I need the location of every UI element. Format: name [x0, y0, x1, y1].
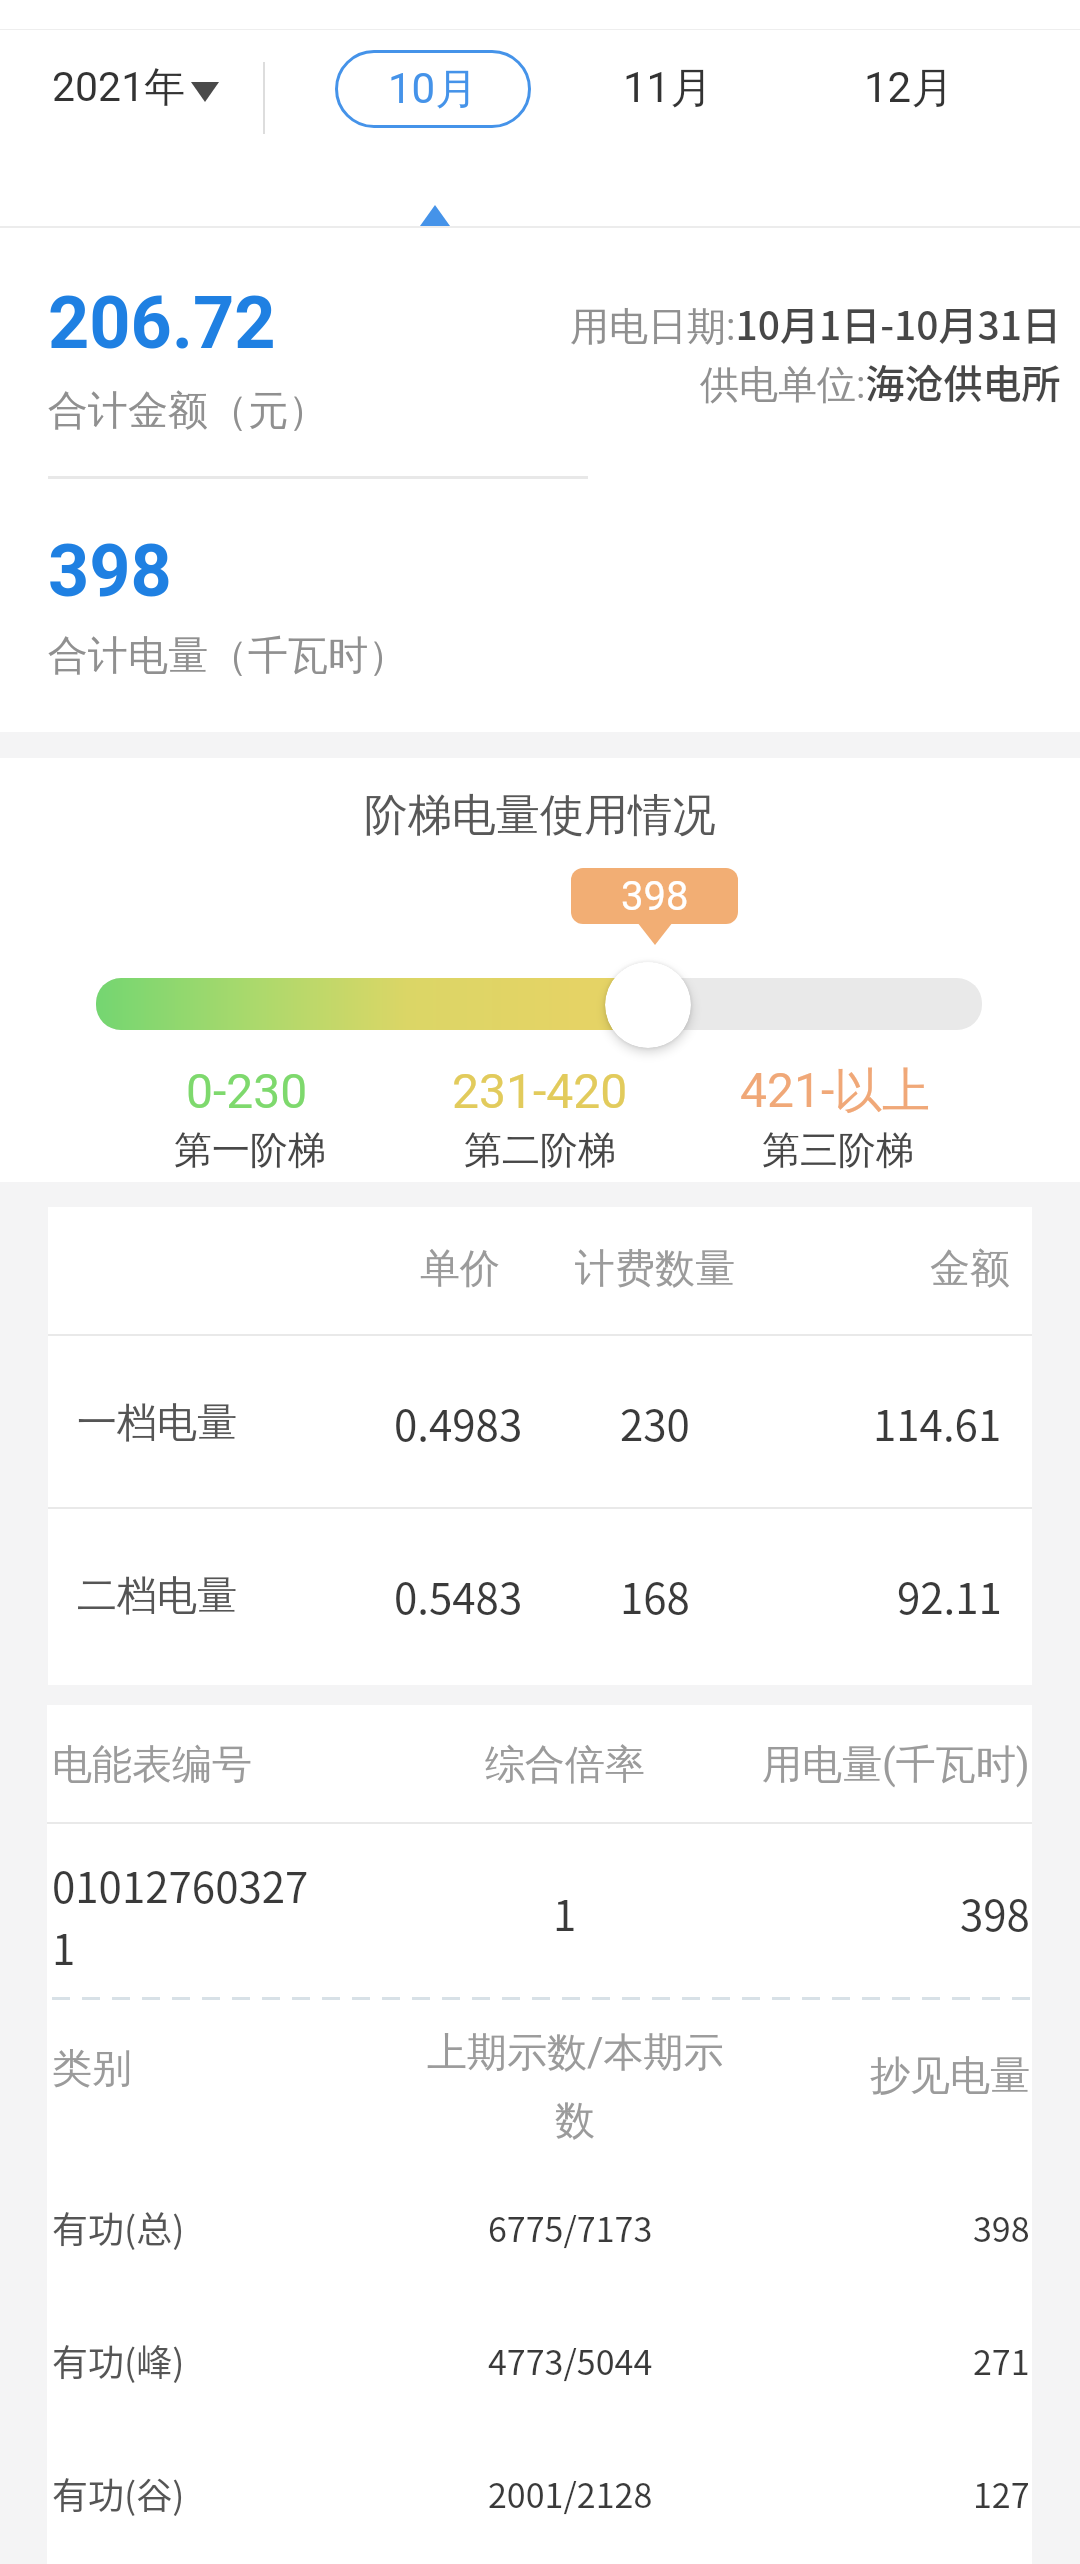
staticText: 1 [52, 1916, 76, 1977]
staticText: 第三阶梯 [762, 1126, 914, 1174]
staticText: 有功(峰) [52, 2334, 185, 2386]
staticText: 合计电量（千瓦时） [48, 630, 408, 680]
staticText: 有功(谷) [52, 2467, 185, 2519]
staticText: 127 [973, 2469, 1030, 2518]
staticText: 2001/2128 [488, 2469, 653, 2518]
staticText: 阶梯电量使用情况 [364, 788, 716, 843]
staticText: 168 [620, 1565, 690, 1626]
staticText: 综合倍率 [485, 1739, 645, 1789]
staticText: 4773/5044 [488, 2336, 653, 2385]
staticText: 271 [973, 2336, 1030, 2385]
staticText: 抄见电量 [870, 2050, 1030, 2100]
staticText: 0.5483 [394, 1565, 523, 1626]
staticText: 398 [621, 873, 689, 920]
button[interactable] [809, 50, 1009, 128]
staticText: 供电单位:海沧供电所 [700, 353, 1061, 410]
staticText: 单价 [420, 1243, 500, 1293]
staticText: 10月 [388, 63, 478, 116]
button[interactable] [568, 50, 768, 128]
staticText: 用电量(千瓦时) [762, 1739, 1030, 1789]
staticText: 有功(总) [52, 2201, 185, 2253]
staticText: 合计金额（元） [48, 385, 328, 435]
staticText: 421-以上 [740, 1061, 931, 1121]
staticText: 206.72 [48, 281, 276, 365]
staticText: 01012760327 [52, 1854, 309, 1915]
staticText: 231-420 [452, 1063, 628, 1119]
staticText: 6775/7173 [488, 2203, 653, 2252]
staticText: 0.4983 [394, 1392, 523, 1453]
button[interactable] [605, 962, 691, 1048]
staticText: 数 [555, 2095, 595, 2145]
staticText: 上期示数/本期示 [427, 2027, 724, 2077]
staticText: 用电日期:10月1日-10月31日 [570, 295, 1061, 352]
staticText: 2021年 [52, 62, 186, 114]
staticText: 230 [620, 1392, 690, 1453]
staticText: 二档电量 [77, 1570, 237, 1620]
staticText: 第二阶梯 [464, 1126, 616, 1174]
staticText: 金额 [930, 1243, 1010, 1293]
staticText: 类别 [52, 2043, 132, 2093]
staticText: 398 [48, 529, 172, 613]
staticText: 电能表编号 [52, 1739, 252, 1789]
staticText: 一档电量 [77, 1397, 237, 1447]
button[interactable] [40, 50, 240, 130]
staticText: 11月 [623, 62, 713, 115]
staticText: 398 [960, 1882, 1030, 1943]
staticText: 第一阶梯 [174, 1126, 326, 1174]
staticText: 计费数量 [575, 1243, 735, 1293]
staticText: 1 [553, 1882, 577, 1943]
staticText: 0-230 [186, 1063, 308, 1119]
staticText: 92.11 [897, 1565, 1002, 1626]
staticText: 12月 [864, 62, 954, 115]
staticText: 114.61 [873, 1392, 1002, 1453]
button[interactable]: 10月 [335, 50, 531, 128]
staticText: 398 [973, 2203, 1030, 2252]
